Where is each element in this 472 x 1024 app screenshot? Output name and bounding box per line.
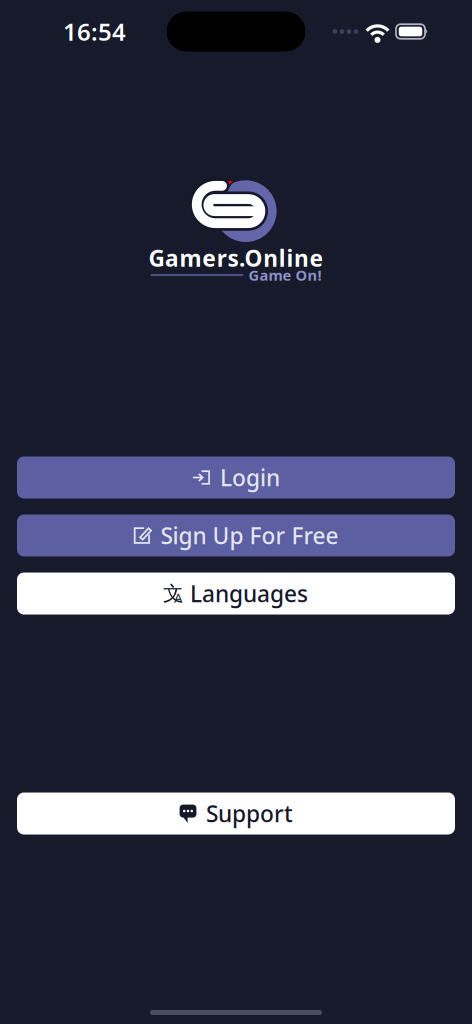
staticText: A xyxy=(174,589,183,606)
staticText: Languages xyxy=(190,578,308,608)
staticText: Sign Up For Free xyxy=(160,520,338,550)
staticText: 文 xyxy=(163,581,183,606)
staticText: Support xyxy=(206,798,293,828)
button[interactable]: Sign Up For Free xyxy=(17,514,455,556)
button[interactable]: Support xyxy=(17,792,455,834)
button[interactable]: Login xyxy=(17,456,455,498)
button[interactable]: 文 xyxy=(17,572,455,614)
staticText: Game On! xyxy=(248,265,321,285)
staticText: Login xyxy=(220,462,280,492)
staticText: Gamers.Online xyxy=(148,243,324,273)
staticText: 16:54 xyxy=(63,16,126,47)
